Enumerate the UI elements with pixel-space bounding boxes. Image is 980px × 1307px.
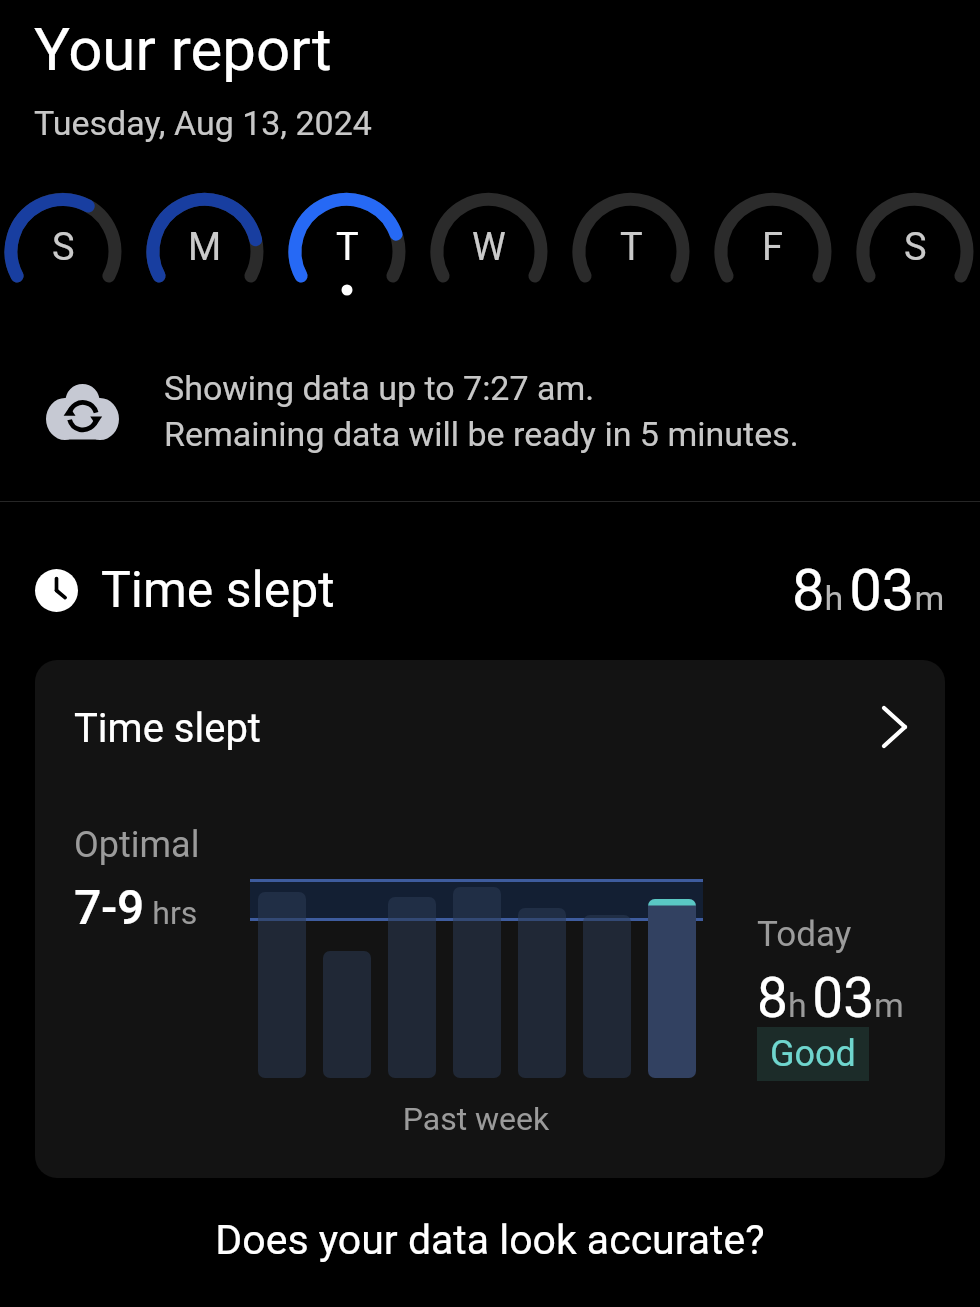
button[interactable]: Time slept bbox=[35, 554, 945, 626]
staticText: M bbox=[188, 225, 222, 270]
button[interactable]: T bbox=[287, 186, 407, 316]
staticText: Optimal bbox=[74, 824, 200, 866]
staticText: Your report bbox=[34, 14, 332, 84]
staticText: 8h 03m bbox=[757, 966, 904, 1030]
staticText: T bbox=[620, 225, 643, 270]
button[interactable]: Time slept bbox=[35, 660, 945, 1178]
staticText: Time slept bbox=[101, 561, 335, 620]
staticText: Past week bbox=[236, 1100, 716, 1138]
button[interactable]: Open time slept details bbox=[869, 702, 919, 752]
staticText: W bbox=[472, 225, 506, 270]
staticText: Good bbox=[770, 1033, 856, 1075]
staticText: Does your data look accurate? bbox=[0, 1216, 980, 1264]
staticText: S bbox=[52, 225, 75, 270]
staticText: Tuesday, Aug 13, 2024 bbox=[34, 103, 372, 143]
staticText: Today bbox=[757, 914, 852, 955]
staticText: Time slept bbox=[74, 705, 261, 752]
staticText: T bbox=[336, 225, 359, 270]
button[interactable]: T bbox=[571, 186, 691, 316]
staticText: 8h 03m bbox=[792, 556, 945, 624]
staticText: 7-9 hrs bbox=[74, 879, 198, 935]
button[interactable]: F bbox=[713, 186, 833, 316]
staticText: S bbox=[904, 225, 927, 270]
button[interactable]: S bbox=[855, 186, 975, 316]
button[interactable]: S bbox=[3, 186, 123, 316]
staticText: F bbox=[762, 225, 784, 270]
other: Syncing bbox=[46, 384, 119, 440]
staticText: Showing data up to 7:27 am. Remaining da… bbox=[164, 368, 799, 455]
button[interactable]: M bbox=[145, 186, 265, 316]
button[interactable]: W bbox=[429, 186, 549, 316]
